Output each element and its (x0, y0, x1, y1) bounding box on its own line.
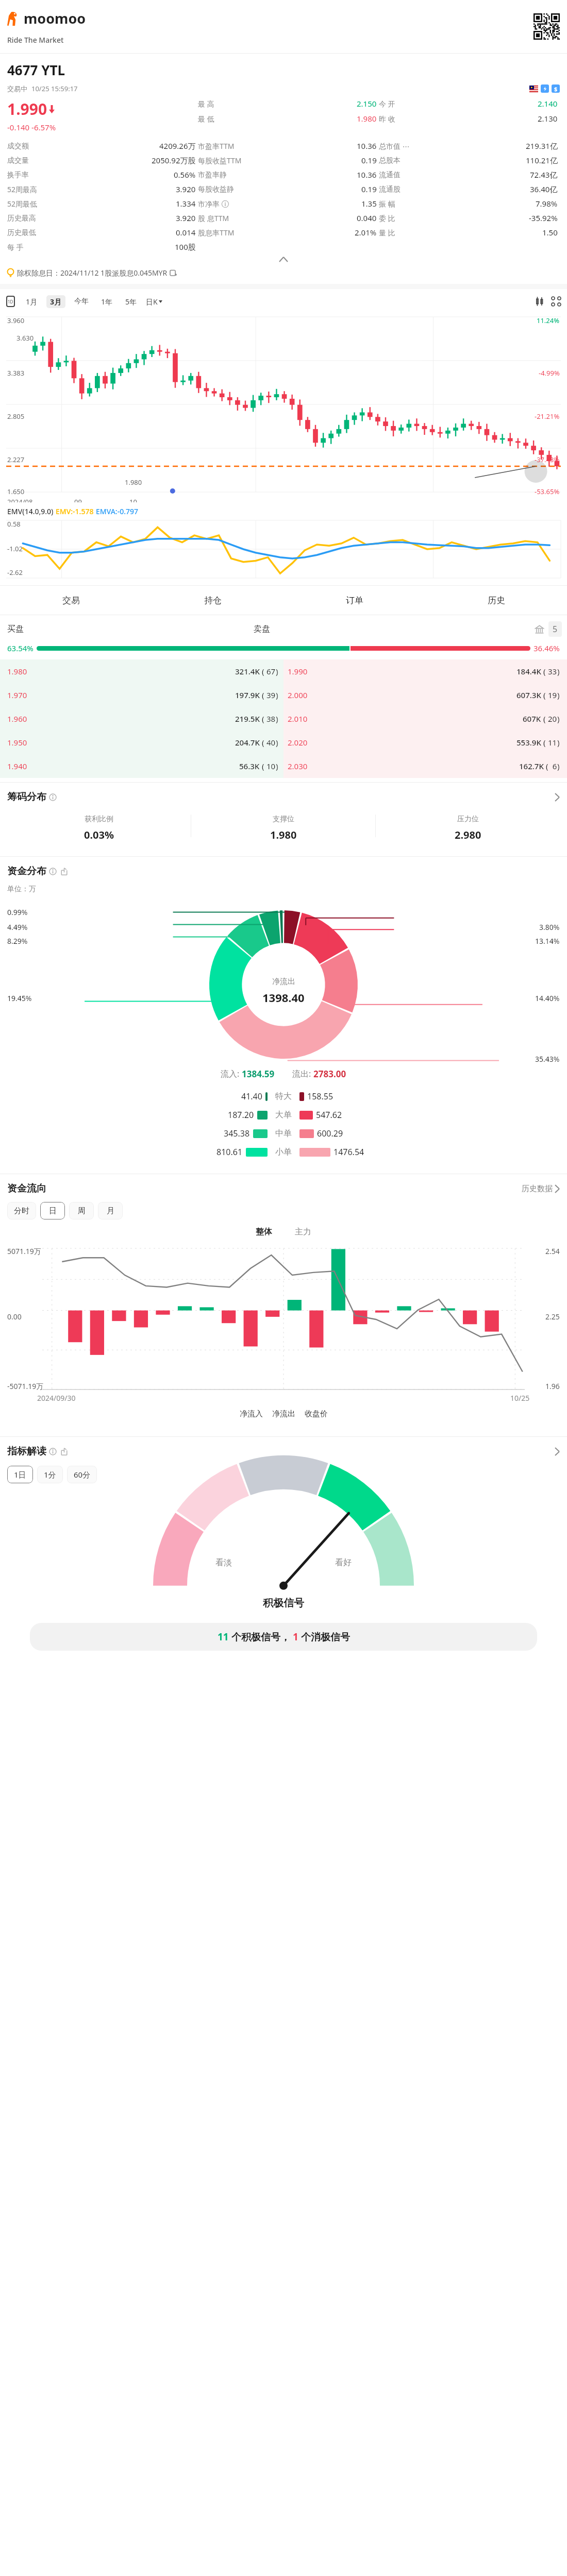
staticText: ) (276, 737, 278, 748)
button[interactable]: 历史 (425, 586, 567, 615)
staticText: 2024/09/30 (37, 1393, 76, 1403)
staticText: moomoo (24, 9, 86, 28)
button[interactable]: 5 (548, 621, 562, 637)
button[interactable]: 整体 (256, 1227, 272, 1237)
button[interactable]: 持仓 (142, 586, 283, 615)
button[interactable]: 日K (146, 297, 162, 307)
staticText: -21.21% (535, 412, 560, 421)
staticText: 1.960 (7, 714, 27, 724)
button[interactable]: 2.010 (283, 707, 567, 731)
staticText: 2783.00 (313, 1068, 346, 1080)
staticText: 4.49% (7, 922, 28, 932)
staticText: 1.990 (288, 666, 308, 676)
staticText: 1.980 (270, 828, 297, 842)
staticText: 2.020 (288, 737, 308, 748)
button[interactable]: 资金分布 (7, 865, 560, 877)
staticText: 卖盘 (254, 624, 270, 634)
button[interactable]: 1.990 (283, 659, 567, 683)
staticText: 2.000 (288, 690, 308, 700)
button[interactable]: 2.020 (283, 731, 567, 754)
staticText: 52周最低 (7, 199, 38, 209)
button[interactable]: 除权除息日：2024/11/12 1股派股息0.045MYR (7, 268, 560, 278)
button[interactable]: 周 (69, 1202, 94, 1219)
staticText: 5071.19万 (7, 1246, 41, 1256)
button[interactable]: 今年 (71, 295, 92, 308)
staticText: 日 (49, 1206, 57, 1216)
button[interactable]: 1月 (22, 295, 41, 308)
staticText: 2.980 (455, 828, 481, 842)
staticText: 3.630 (16, 333, 34, 343)
staticText: 1月 (26, 297, 38, 307)
button[interactable]: Candle style (535, 296, 545, 307)
button[interactable]: 1.950 (0, 731, 283, 754)
button[interactable]: 主力 (295, 1227, 311, 1237)
button[interactable]: 1年 (97, 295, 116, 308)
staticText: 看好 (335, 1557, 352, 1568)
staticText: 13.14% (535, 936, 560, 946)
staticText: 0.58 (7, 519, 21, 529)
staticText: 1398.40 (262, 990, 305, 1005)
staticText: -37.43% (535, 455, 560, 464)
button[interactable]: 1D (6, 296, 15, 307)
staticText: EMVA:-0.797 (96, 506, 139, 516)
staticText: 11 (218, 1630, 229, 1643)
button[interactable]: 指标解读 (7, 1445, 560, 1458)
button[interactable]: 日 (40, 1202, 65, 1219)
button[interactable]: 资金流向 (7, 1182, 560, 1195)
staticText: 2.805 (7, 412, 25, 421)
staticText: 流出: (292, 1068, 313, 1079)
staticText: 158.55 (307, 1091, 333, 1102)
button[interactable] (7, 257, 560, 262)
button[interactable]: 1日 (7, 1466, 33, 1483)
staticText: 分时 (14, 1206, 29, 1216)
button[interactable]: 1分 (37, 1466, 63, 1483)
staticText: 总股本 (379, 156, 401, 165)
button[interactable]: 3月 (46, 295, 65, 308)
button[interactable]: 交易 (0, 586, 142, 615)
button[interactable]: 5年 (122, 295, 141, 308)
staticText: 买盘 (7, 624, 24, 634)
button[interactable]: 订单 (283, 586, 425, 615)
staticText: 2.227 (7, 455, 25, 464)
staticText: EMV(14.0,9.0) (7, 506, 56, 516)
staticText: 10.36 (357, 170, 377, 180)
button[interactable]: 11 (30, 1623, 537, 1651)
button[interactable]: Broker (535, 624, 544, 634)
button[interactable]: 1.980 (0, 659, 283, 683)
staticText: 1年 (101, 297, 113, 307)
button[interactable]: 1.970 (0, 683, 283, 707)
staticText: 2.25 (545, 1312, 560, 1321)
button[interactable]: 1.960 (0, 707, 283, 731)
staticText: 6 (548, 761, 557, 771)
staticText: ) (276, 714, 278, 724)
staticText: ) (276, 761, 278, 771)
staticText: 每股收益静 (198, 185, 234, 194)
staticText: 交易中 (7, 84, 27, 93)
staticText: 历史 (488, 595, 505, 606)
staticText: 1日 (14, 1469, 26, 1480)
staticText: 14.40% (535, 993, 560, 1003)
button[interactable]: 60分 (67, 1466, 97, 1483)
staticText: 0.99% (7, 907, 28, 917)
staticText: 周 (78, 1206, 86, 1216)
button[interactable]: 2.000 (283, 683, 567, 707)
staticText: ) (276, 666, 278, 676)
staticText: 19 (546, 690, 557, 700)
button[interactable]: 分时 (7, 1202, 36, 1219)
button[interactable]: 月 (98, 1202, 123, 1219)
staticText: 看淡 (215, 1557, 232, 1568)
staticText: 204.7K (235, 737, 260, 748)
staticText: 收盘价 (305, 1409, 328, 1419)
button[interactable]: More charts (552, 297, 561, 306)
staticText: ( (260, 714, 264, 724)
staticText: 历史最高 (7, 214, 36, 223)
staticText: 日K (146, 297, 158, 307)
staticText: 3月 (50, 297, 62, 307)
staticText: 36.46% (533, 643, 560, 653)
button[interactable]: 2.030 (283, 754, 567, 778)
staticText: 4677 YTL (7, 61, 65, 79)
staticText: 2.01% (355, 227, 377, 238)
staticText: 8.29% (7, 936, 28, 946)
button[interactable]: 筹码分布 (7, 791, 560, 803)
button[interactable]: 1.940 (0, 754, 283, 778)
